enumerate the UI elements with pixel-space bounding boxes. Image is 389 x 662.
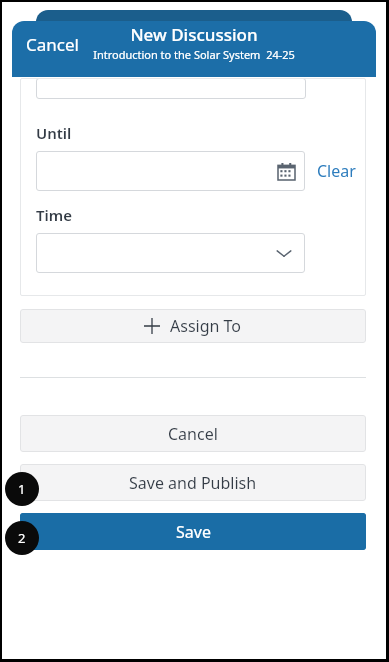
staticText: Assign To [170, 315, 242, 337]
staticText: 2 [18, 529, 26, 547]
staticText: Clear [317, 160, 356, 182]
staticText: Cancel [168, 423, 218, 445]
staticText: Time [36, 205, 72, 225]
button[interactable]: Save [20, 513, 366, 550]
staticText: 1 [18, 480, 26, 498]
button[interactable]: Clear [317, 160, 356, 182]
staticText: Cancel [26, 33, 79, 56]
staticText: New Discussion [130, 23, 258, 46]
button[interactable]: Save and Publish [20, 464, 366, 501]
button[interactable]: Pick date [36, 151, 305, 191]
button[interactable] [36, 233, 305, 273]
staticText: Introduction to the Solar System 24-25 [93, 47, 295, 62]
button[interactable]: Assign To [20, 309, 366, 343]
staticText: Until [36, 123, 72, 143]
staticText: Save and Publish [129, 472, 257, 494]
staticText: Save [176, 521, 211, 543]
button[interactable]: Pick date [278, 163, 295, 180]
button[interactable]: Cancel [22, 31, 83, 58]
button[interactable] [36, 78, 306, 99]
button[interactable]: Cancel [20, 415, 366, 452]
